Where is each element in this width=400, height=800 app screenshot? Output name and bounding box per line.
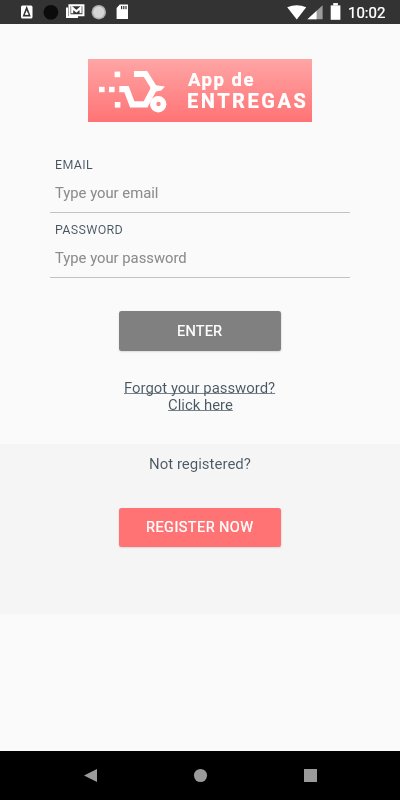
staticText: 10:02 — [348, 4, 386, 22]
button[interactable]: App de — [88, 59, 312, 122]
staticText: Type your email — [55, 184, 159, 201]
staticText: Click here — [168, 396, 233, 413]
button[interactable]: Forgot your password? — [0, 379, 400, 413]
staticText: EMAIL — [55, 157, 93, 172]
staticText: REGISTER NOW — [146, 519, 254, 536]
staticText: Not registered? — [149, 455, 251, 473]
staticText: Forgot your password? — [124, 379, 276, 396]
button[interactable]: Home — [176, 751, 224, 799]
button[interactable]: REGISTER NOW — [119, 508, 281, 547]
staticText: ENTER — [177, 323, 223, 340]
button[interactable]: Back — [66, 751, 114, 799]
staticText: App de — [188, 69, 255, 91]
staticText: ENTREGAS — [187, 89, 309, 112]
staticText: Type your password — [55, 249, 187, 266]
staticText: PASSWORD — [55, 222, 124, 237]
button[interactable]: ENTER — [119, 311, 281, 351]
button[interactable]: Recents — [286, 751, 334, 799]
